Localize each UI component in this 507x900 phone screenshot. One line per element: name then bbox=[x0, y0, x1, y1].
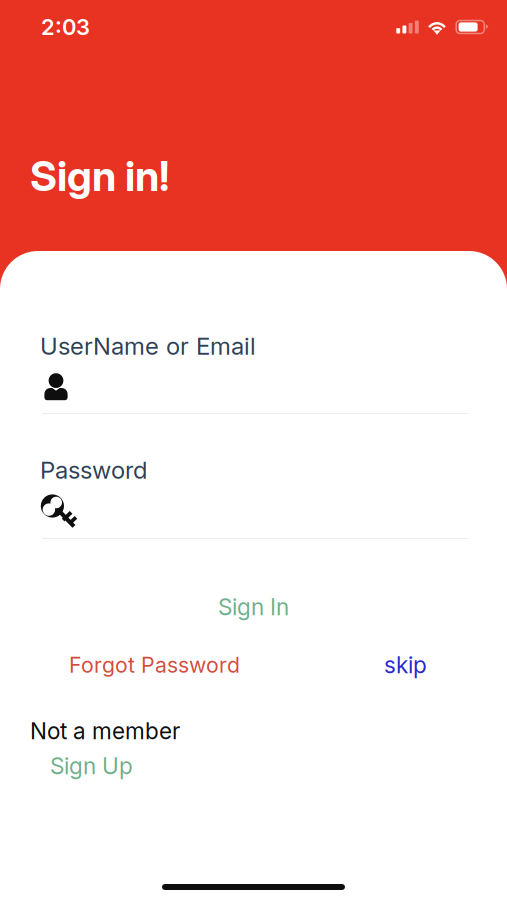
staticText: Forgot Password bbox=[69, 652, 240, 678]
staticText: Sign In bbox=[218, 593, 289, 621]
staticText: Not a member bbox=[30, 717, 180, 745]
staticText: skip bbox=[384, 651, 427, 679]
staticText: UserName or Email bbox=[40, 331, 256, 360]
staticText: 2:03 bbox=[41, 14, 90, 40]
button[interactable]: Password field bbox=[0, 489, 507, 535]
button[interactable]: skip bbox=[384, 651, 507, 679]
button[interactable]: UserName or Email field bbox=[0, 367, 507, 407]
button[interactable]: Forgot Password bbox=[0, 652, 240, 678]
staticText: Password bbox=[40, 455, 147, 484]
button[interactable]: Sign Up bbox=[0, 752, 133, 780]
staticText: Sign in! bbox=[30, 151, 169, 201]
staticText: Sign Up bbox=[50, 752, 133, 780]
button[interactable]: Sign In bbox=[0, 592, 507, 622]
